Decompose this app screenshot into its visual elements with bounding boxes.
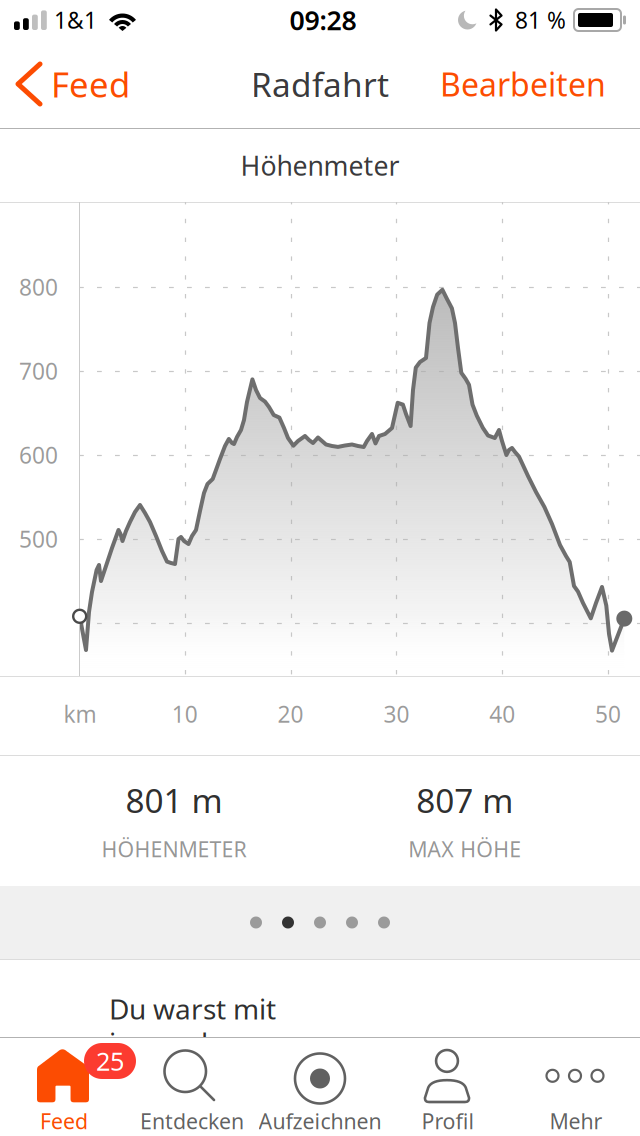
staticText: 50 — [595, 699, 621, 729]
staticText: jemandem — [109, 1024, 250, 1061]
staticText: 800 — [19, 272, 58, 302]
button[interactable]: Bearbeiten — [426, 40, 640, 128]
staticText: 807 m — [416, 778, 513, 822]
staticText: 700 — [19, 356, 58, 386]
staticText: Profil — [421, 1107, 474, 1135]
staticText: 20 — [278, 699, 304, 729]
staticText: 40 — [489, 699, 515, 729]
staticText: MAX HÖHE — [408, 835, 521, 863]
staticText: 600 — [19, 440, 58, 470]
staticText: Bearbeiten — [440, 63, 606, 105]
staticText: 10 — [172, 699, 198, 729]
staticText: Mehr — [549, 1107, 602, 1135]
button[interactable]: 25 — [0, 1037, 128, 1136]
staticText: 801 m — [125, 778, 222, 822]
staticText: Feed — [51, 61, 130, 107]
staticText: Du warst mit — [109, 990, 276, 1027]
staticText: 81 % — [515, 5, 566, 35]
staticText: Entdecken — [140, 1107, 244, 1135]
staticText: Radfahrt — [251, 62, 389, 106]
staticText: 25 — [96, 1044, 124, 1078]
staticText: HÖHENMETER — [101, 835, 246, 863]
button[interactable]: Feed — [0, 40, 144, 128]
staticText: 1&1 — [54, 5, 97, 35]
staticText: km — [63, 699, 96, 729]
staticText: 30 — [383, 699, 409, 729]
button[interactable]: Mehr — [512, 1037, 640, 1136]
button[interactable]: Aufzeichnen — [256, 1037, 384, 1136]
button[interactable]: Profil — [384, 1037, 512, 1136]
staticText: Höhenmeter — [240, 148, 399, 183]
staticText: 09:28 — [289, 2, 356, 38]
button[interactable]: Entdecken — [128, 1037, 256, 1136]
staticText: Aufzeichnen — [258, 1107, 381, 1135]
staticText: Feed — [40, 1107, 88, 1135]
staticText: 500 — [19, 524, 58, 554]
